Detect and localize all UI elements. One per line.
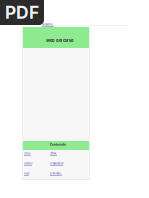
staticText: asignatura bbox=[42, 23, 52, 26]
staticText: Guia bbox=[24, 172, 29, 175]
button[interactable]: Inicio bbox=[24, 152, 31, 155]
button[interactable]: Organizacion bbox=[50, 162, 63, 165]
staticText: Web del curso bbox=[46, 38, 73, 43]
button[interactable]: Horario bbox=[24, 162, 32, 165]
staticText: Temas bbox=[50, 152, 56, 155]
staticText: PDF bbox=[5, 2, 39, 23]
staticText: Horario bbox=[24, 162, 32, 165]
button[interactable]: PDF bbox=[0, 0, 44, 25]
staticText: Inicio bbox=[24, 152, 30, 155]
staticText: Contenido bbox=[50, 143, 66, 146]
button[interactable]: Temas bbox=[50, 152, 57, 155]
staticText: Bibliografia bbox=[50, 172, 62, 175]
button[interactable]: asignatura bbox=[42, 23, 54, 26]
button[interactable]: Guia bbox=[24, 172, 29, 175]
staticText: Organizacion bbox=[50, 162, 63, 165]
button[interactable]: Bibliografia bbox=[50, 172, 62, 175]
